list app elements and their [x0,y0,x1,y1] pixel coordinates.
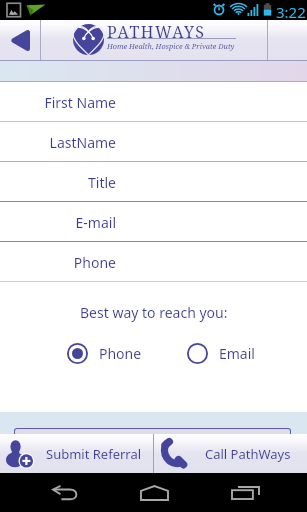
button[interactable]: Call PathWays [154,434,307,473]
staticText: E-mail [0,213,116,232]
button[interactable]: Back [0,20,40,60]
staticText: Phone [99,344,142,363]
button[interactable]: LastName [0,122,307,162]
button[interactable]: Title [0,162,307,202]
button[interactable]: E-mail [0,202,307,242]
staticText: Call PathWays [205,445,291,463]
staticText: PATHWAYS [107,21,206,43]
button[interactable]: Phone [67,343,142,364]
staticText: LastName [0,133,116,152]
staticText: Email [219,344,255,363]
button[interactable]: Email [187,343,255,364]
staticText: Submit Referral [46,445,142,463]
staticText: Best way to reach you: [80,303,228,322]
staticText: First Name [0,93,116,112]
staticText: Home Health, Hospice & Private Duty [107,41,235,51]
staticText: Title [0,173,116,192]
button[interactable]: Recent apps [222,473,268,512]
staticText: 3:22 [276,2,306,22]
button[interactable]: Submit Referral [0,434,153,473]
staticText: Phone [0,253,116,272]
button[interactable]: First Name [0,82,307,122]
button[interactable]: Home [131,473,177,512]
button[interactable]: Phone [0,242,307,282]
button[interactable]: Back [41,473,86,512]
